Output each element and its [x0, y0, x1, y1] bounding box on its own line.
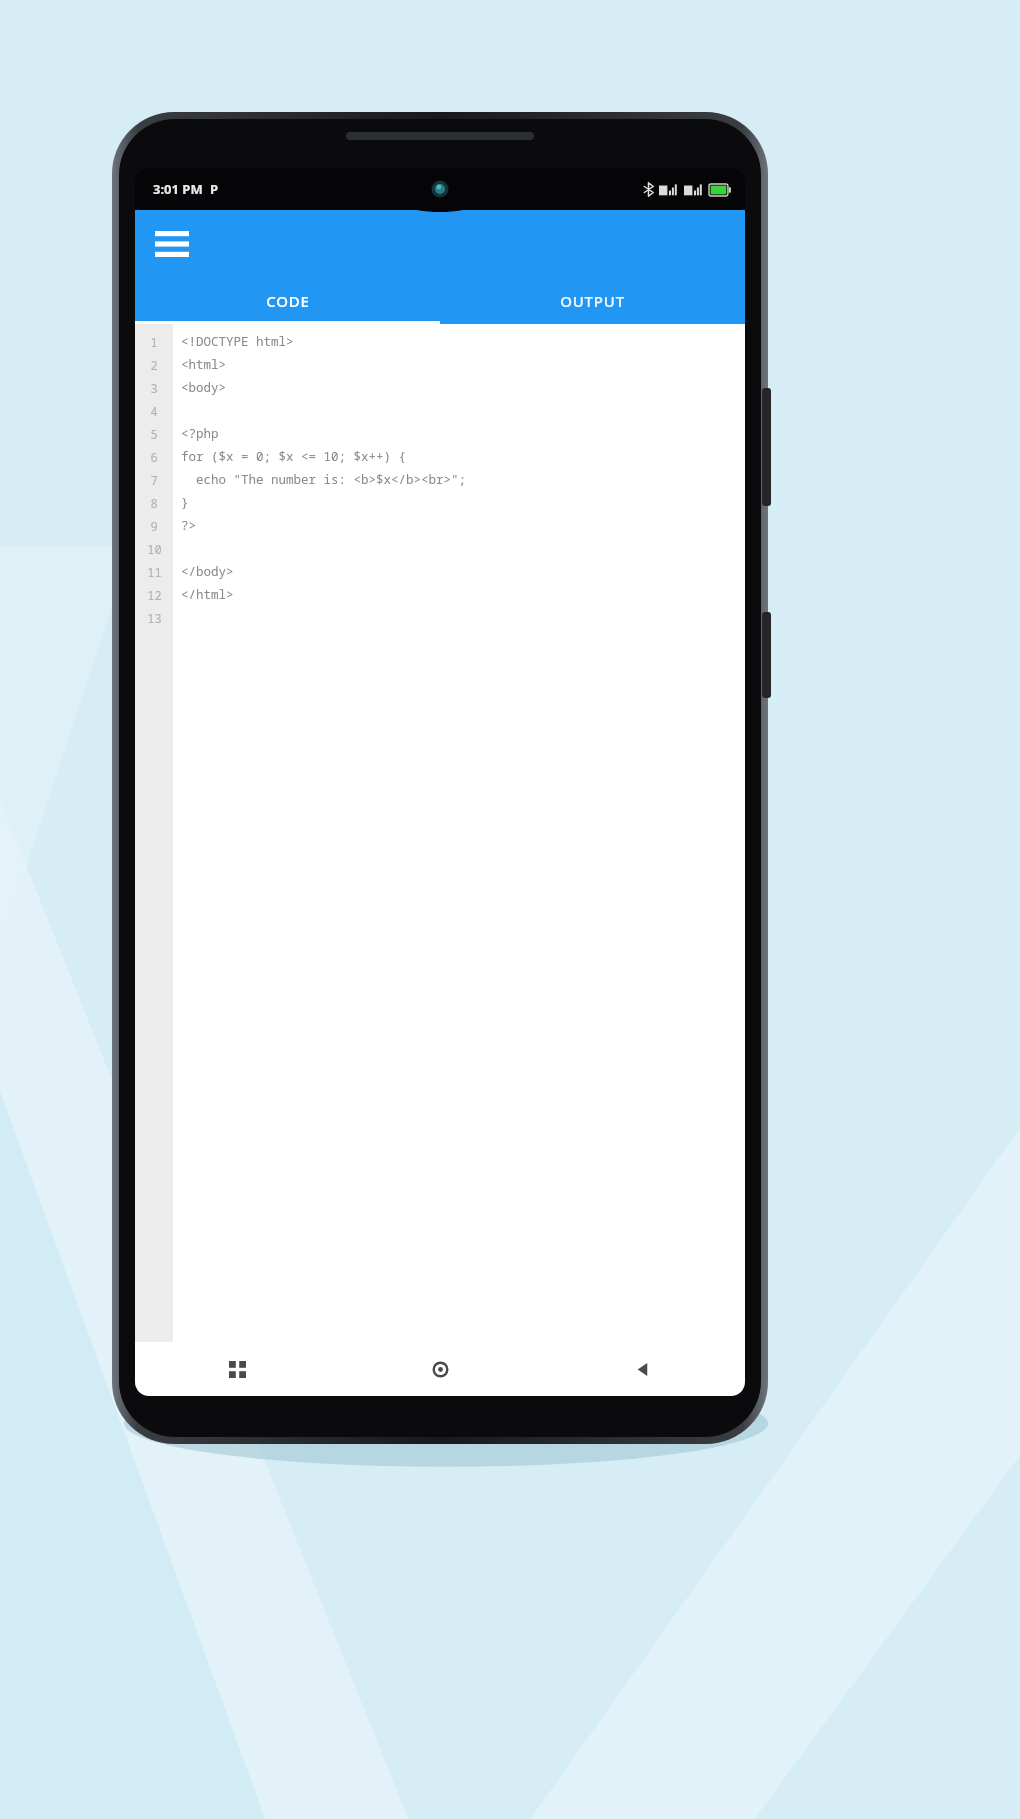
button[interactable]: OUTPUT	[440, 278, 745, 324]
staticText: 11	[147, 564, 162, 580]
staticText: <!DOCTYPE html>	[181, 333, 294, 350]
staticText: </html>	[181, 586, 234, 603]
staticText: P	[210, 180, 219, 198]
staticText: 6	[150, 449, 158, 465]
button[interactable]: Open navigation menu	[145, 217, 199, 271]
staticText: 7	[150, 472, 158, 488]
staticText: 12	[147, 587, 162, 603]
staticText: 3	[150, 380, 158, 396]
staticText: ?>	[181, 517, 197, 534]
staticText: 4	[150, 403, 158, 419]
staticText: 1	[150, 334, 158, 350]
staticText: for ($x = 0; $x <= 10; $x++) {	[181, 448, 407, 465]
staticText: <html>	[181, 356, 227, 373]
staticText: 3:01 PM	[153, 180, 203, 198]
staticText: 5	[150, 426, 158, 442]
staticText: 9	[150, 518, 158, 534]
staticText: CODE	[266, 291, 310, 311]
staticText: OUTPUT	[560, 291, 625, 311]
staticText: 13	[147, 610, 162, 626]
staticText: 2	[150, 357, 158, 373]
button[interactable]: Recent apps	[135, 1342, 339, 1396]
staticText: 8	[150, 495, 158, 511]
staticText: }	[181, 494, 189, 511]
staticText: </body>	[181, 563, 234, 580]
staticText: <body>	[181, 379, 227, 396]
button[interactable]: CODE	[135, 278, 440, 324]
button[interactable]: Back	[542, 1342, 745, 1396]
button[interactable]: Home	[339, 1342, 542, 1396]
staticText: <?php	[181, 425, 219, 442]
staticText: echo "The number is: <b>$x</b><br>";	[181, 471, 467, 488]
staticText: 10	[147, 541, 162, 557]
